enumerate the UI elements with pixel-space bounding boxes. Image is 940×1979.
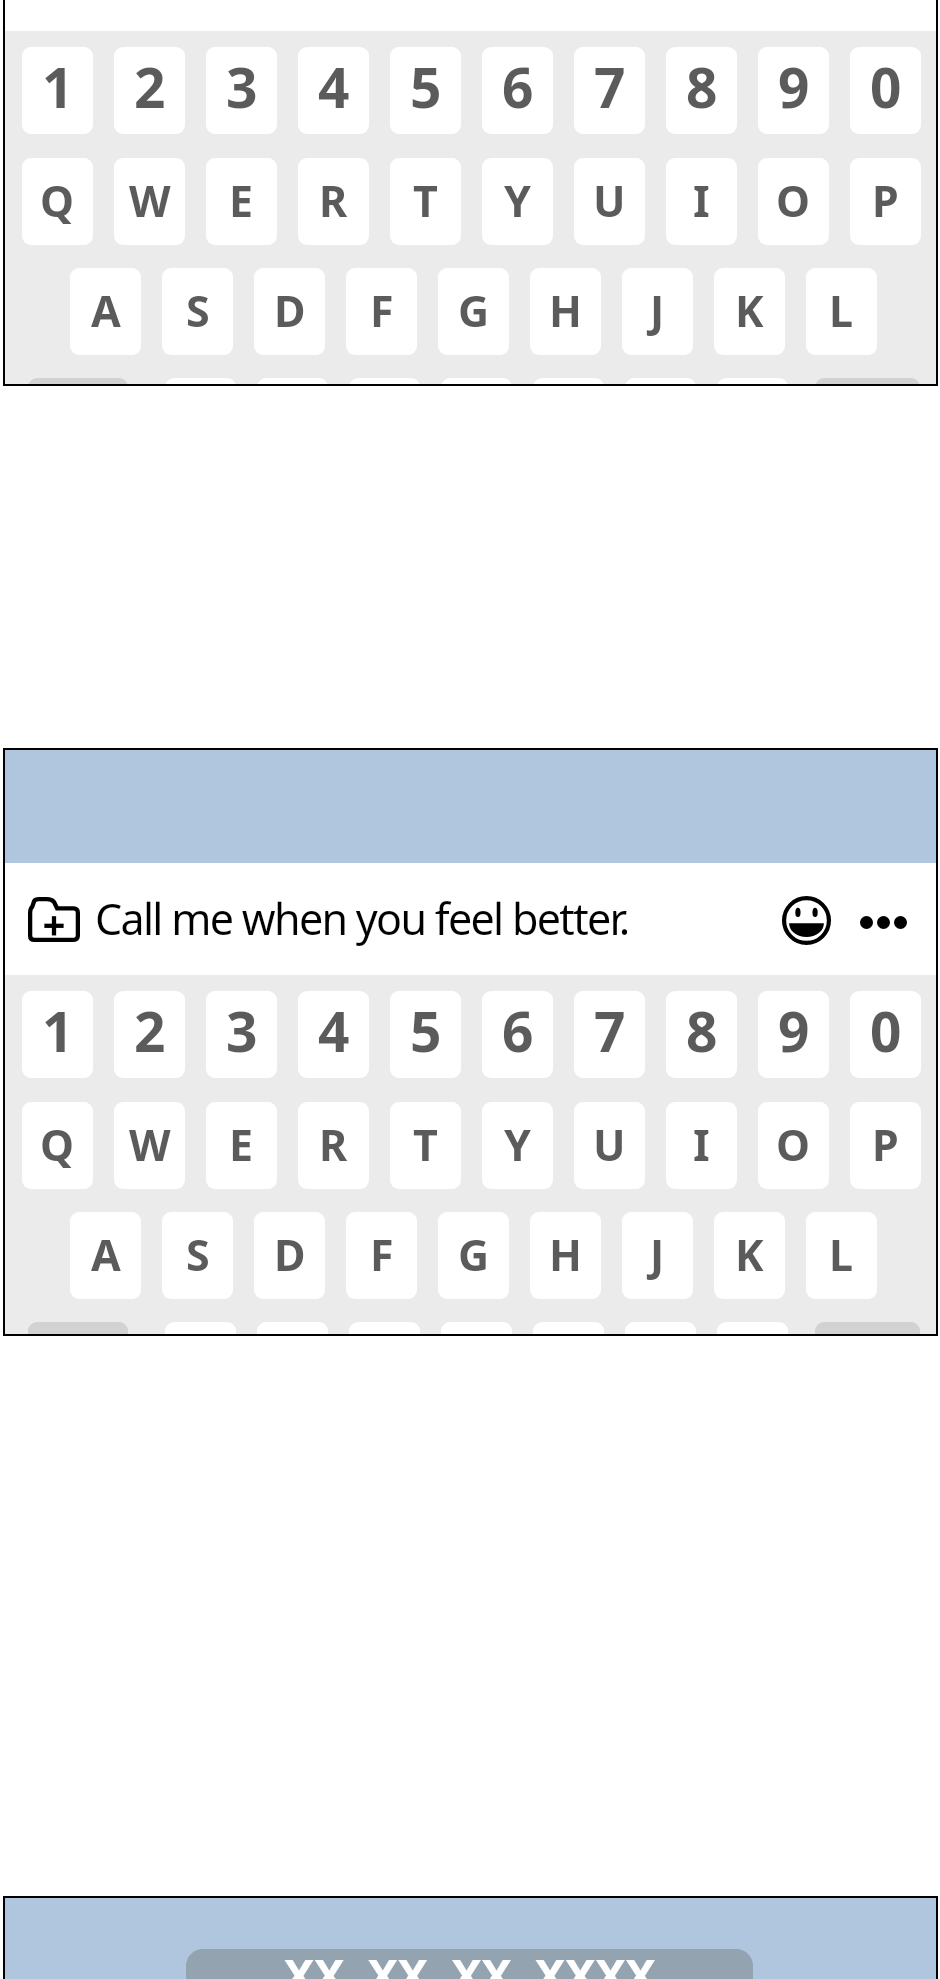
button[interactable]: L — [806, 1212, 877, 1299]
button[interactable]: K — [714, 268, 785, 355]
button[interactable]: T — [390, 1102, 461, 1189]
button[interactable]: B — [533, 1322, 604, 1336]
button[interactable]: O — [758, 1102, 829, 1189]
button[interactable]: Y — [482, 158, 553, 245]
button[interactable]: 8 — [666, 47, 737, 134]
staticText: W — [129, 1115, 171, 1174]
staticText: 5 — [410, 49, 442, 124]
button[interactable]: O — [758, 158, 829, 245]
button[interactable]: E — [206, 158, 277, 245]
button[interactable]: More options — [860, 916, 907, 929]
button[interactable]: V — [441, 378, 512, 386]
button[interactable]: B — [533, 378, 604, 386]
other: Emoji — [782, 896, 831, 945]
button[interactable]: G — [438, 268, 509, 355]
staticText: 2 — [134, 993, 166, 1068]
button[interactable]: Attach file — [3, 863, 938, 975]
button[interactable]: E — [206, 1102, 277, 1189]
button[interactable]: X — [257, 1322, 328, 1336]
button[interactable]: R — [298, 1102, 369, 1189]
button[interactable]: J — [622, 268, 693, 355]
staticText: Q — [40, 171, 75, 230]
button[interactable]: 8 — [666, 991, 737, 1078]
button[interactable]: 2 — [114, 47, 185, 134]
staticText: O — [776, 171, 811, 230]
button[interactable]: K — [714, 1212, 785, 1299]
staticText: F — [370, 281, 394, 340]
button[interactable]: 0 — [850, 47, 921, 134]
staticText: U — [593, 171, 626, 230]
button[interactable] — [28, 378, 128, 386]
button[interactable]: L — [806, 268, 877, 355]
button[interactable]: S — [162, 268, 233, 355]
button[interactable]: 7 — [574, 47, 645, 134]
button[interactable]: 1 — [22, 991, 93, 1078]
button[interactable]: Attach file — [28, 897, 80, 942]
button[interactable]: X — [257, 378, 328, 386]
button[interactable]: I — [666, 158, 737, 245]
button[interactable]: 3 — [206, 47, 277, 134]
button[interactable]: 6 — [482, 991, 553, 1078]
button[interactable]: M — [717, 1322, 788, 1336]
button[interactable]: C — [349, 1322, 420, 1336]
button[interactable]: D — [254, 268, 325, 355]
staticText: 8 — [686, 49, 718, 124]
button[interactable]: J — [622, 1212, 693, 1299]
staticText: K — [735, 281, 764, 340]
button[interactable]: XX XX XX XXXX — [186, 1949, 753, 1979]
button[interactable]: U — [574, 1102, 645, 1189]
button[interactable]: 3 — [206, 991, 277, 1078]
button[interactable]: F — [346, 268, 417, 355]
button[interactable]: H — [530, 268, 601, 355]
button[interactable] — [28, 1322, 128, 1336]
button[interactable]: Z — [165, 378, 236, 386]
button[interactable]: A — [70, 1212, 141, 1299]
button[interactable]: 0 — [850, 991, 921, 1078]
staticText: P — [872, 171, 899, 230]
button[interactable]: 2 — [114, 991, 185, 1078]
staticText: U — [593, 1115, 626, 1174]
button[interactable]: H — [530, 1212, 601, 1299]
button[interactable]: Y — [482, 1102, 553, 1189]
button[interactable]: P — [850, 158, 921, 245]
staticText: T — [413, 1115, 438, 1174]
button[interactable]: D — [254, 1212, 325, 1299]
staticText: A — [91, 281, 121, 340]
staticText: L — [829, 1225, 854, 1284]
button[interactable] — [815, 1322, 920, 1336]
button[interactable]: W — [114, 1102, 185, 1189]
button[interactable]: I — [666, 1102, 737, 1189]
button[interactable]: 9 — [758, 991, 829, 1078]
button[interactable]: F — [346, 1212, 417, 1299]
button[interactable]: 6 — [482, 47, 553, 134]
button[interactable]: 4 — [298, 991, 369, 1078]
button[interactable]: C — [349, 378, 420, 386]
button[interactable]: M — [717, 378, 788, 386]
button[interactable]: W — [114, 158, 185, 245]
button[interactable]: A — [70, 268, 141, 355]
button[interactable]: T — [390, 158, 461, 245]
button[interactable]: 5 — [390, 991, 461, 1078]
button[interactable]: 5 — [390, 47, 461, 134]
button[interactable] — [815, 378, 920, 386]
button[interactable]: 4 — [298, 47, 369, 134]
staticText: 3 — [226, 993, 258, 1068]
button[interactable]: U — [574, 158, 645, 245]
staticText: J — [650, 1225, 665, 1284]
button[interactable]: N — [625, 378, 696, 386]
button[interactable]: 9 — [758, 47, 829, 134]
button[interactable]: S — [162, 1212, 233, 1299]
button[interactable]: 7 — [574, 991, 645, 1078]
button[interactable]: 1 — [22, 47, 93, 134]
button[interactable]: P — [850, 1102, 921, 1189]
button[interactable]: N — [625, 1322, 696, 1336]
button[interactable]: Q — [22, 1102, 93, 1189]
button[interactable]: Emoji — [782, 896, 831, 945]
button[interactable]: G — [438, 1212, 509, 1299]
button[interactable]: R — [298, 158, 369, 245]
button[interactable]: V — [441, 1322, 512, 1336]
button[interactable]: Z — [165, 1322, 236, 1336]
staticText: 6 — [502, 993, 534, 1068]
button[interactable]: Q — [22, 158, 93, 245]
